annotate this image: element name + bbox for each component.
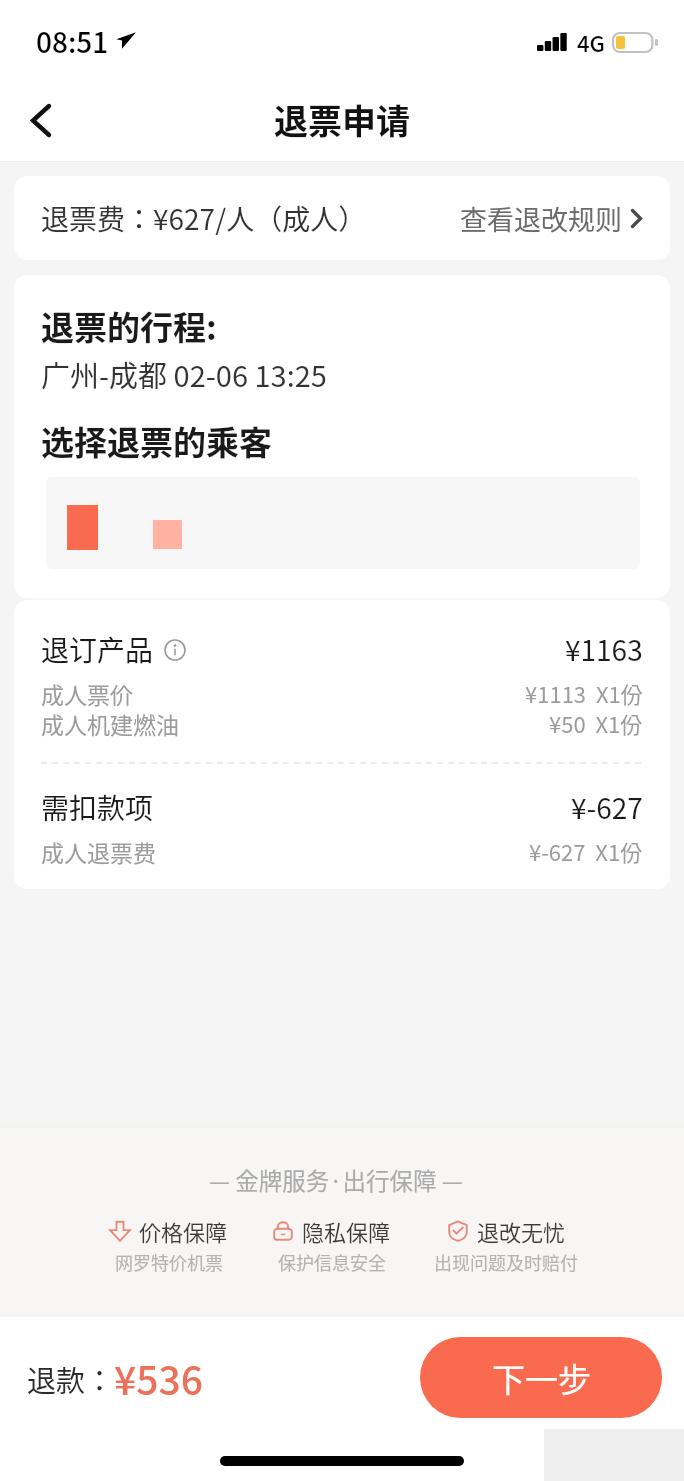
staticText: 退订产品 [41, 629, 154, 668]
staticText: 需扣款项 [41, 787, 154, 826]
staticText: 退改无忧 [477, 1215, 566, 1247]
staticText: 查看退改规则 [460, 199, 622, 238]
staticText: 价格保障 [139, 1215, 228, 1247]
staticText: 成人票价 [41, 677, 133, 707]
button[interactable]: Back [12, 91, 70, 149]
other: Info [164, 639, 186, 661]
staticText: ¥-627 [571, 787, 643, 826]
staticText: — 金牌服务·出行保障 — [209, 1163, 463, 1197]
staticText: 退票的行程: [41, 302, 217, 350]
staticText: 出现问题及时赔付 [434, 1249, 578, 1275]
staticText: 网罗特价机票 [115, 1249, 223, 1275]
staticText: 保护信息安全 [278, 1249, 386, 1275]
button[interactable]: 下一步 [420, 1337, 662, 1418]
staticText: ¥1113 X1份 [525, 677, 643, 707]
staticText: 广州-成都 02-06 13:25 [41, 353, 327, 395]
staticText: 成人退票费 [41, 835, 156, 865]
staticText: 成人机建燃油 [41, 707, 179, 737]
button[interactable] [46, 477, 640, 569]
staticText: 退票费：¥627/人（成人） [41, 198, 367, 239]
staticText: 4G [577, 26, 605, 58]
button[interactable]: 退票费：¥627/人（成人） [14, 176, 670, 260]
staticText: ¥1163 [565, 629, 643, 668]
staticText: ¥50 X1份 [549, 707, 643, 737]
staticText: ¥-627 X1份 [529, 835, 643, 865]
staticText: 选择退票的乘客 [41, 417, 272, 465]
staticText: 退票申请 [274, 95, 410, 144]
staticText: ¥536 [114, 1350, 203, 1406]
staticText: 隐私保障 [302, 1215, 391, 1247]
staticText: 下一步 [492, 1354, 591, 1402]
staticText: 退款： [27, 1358, 115, 1400]
staticText: 08:51 [36, 21, 109, 62]
